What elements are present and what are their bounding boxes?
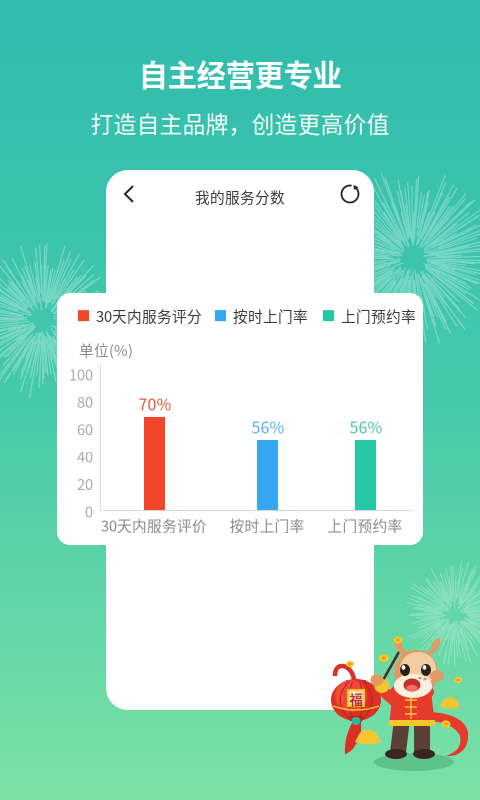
staticText: 0	[85, 500, 93, 522]
staticText: 我的服务分数	[195, 186, 285, 207]
staticText: 30天内服务评分	[96, 305, 202, 326]
staticText: 60	[77, 418, 93, 439]
staticText: 80	[77, 391, 93, 412]
staticText: 20	[77, 473, 93, 494]
staticText: 70%	[138, 392, 171, 415]
staticText: 按时上门率	[233, 305, 308, 326]
staticText: 56%	[251, 415, 284, 438]
staticText: 30天内服务评价	[101, 514, 207, 536]
staticText: 单位(%)	[79, 339, 133, 360]
staticText: 上门预约率	[341, 305, 416, 326]
button[interactable]: Back	[110, 172, 150, 216]
staticText: 上门预约率	[327, 514, 402, 536]
staticText: 按时上门率	[229, 514, 304, 536]
staticText: 打造自主品牌，创造更高价值	[90, 106, 389, 139]
staticText: 40	[77, 446, 93, 467]
staticText: 56%	[349, 415, 382, 438]
staticText: 福	[349, 689, 362, 709]
button[interactable]: Refresh	[330, 172, 370, 216]
staticText: 自主经营更专业	[138, 52, 341, 94]
staticText: 100	[69, 363, 93, 385]
